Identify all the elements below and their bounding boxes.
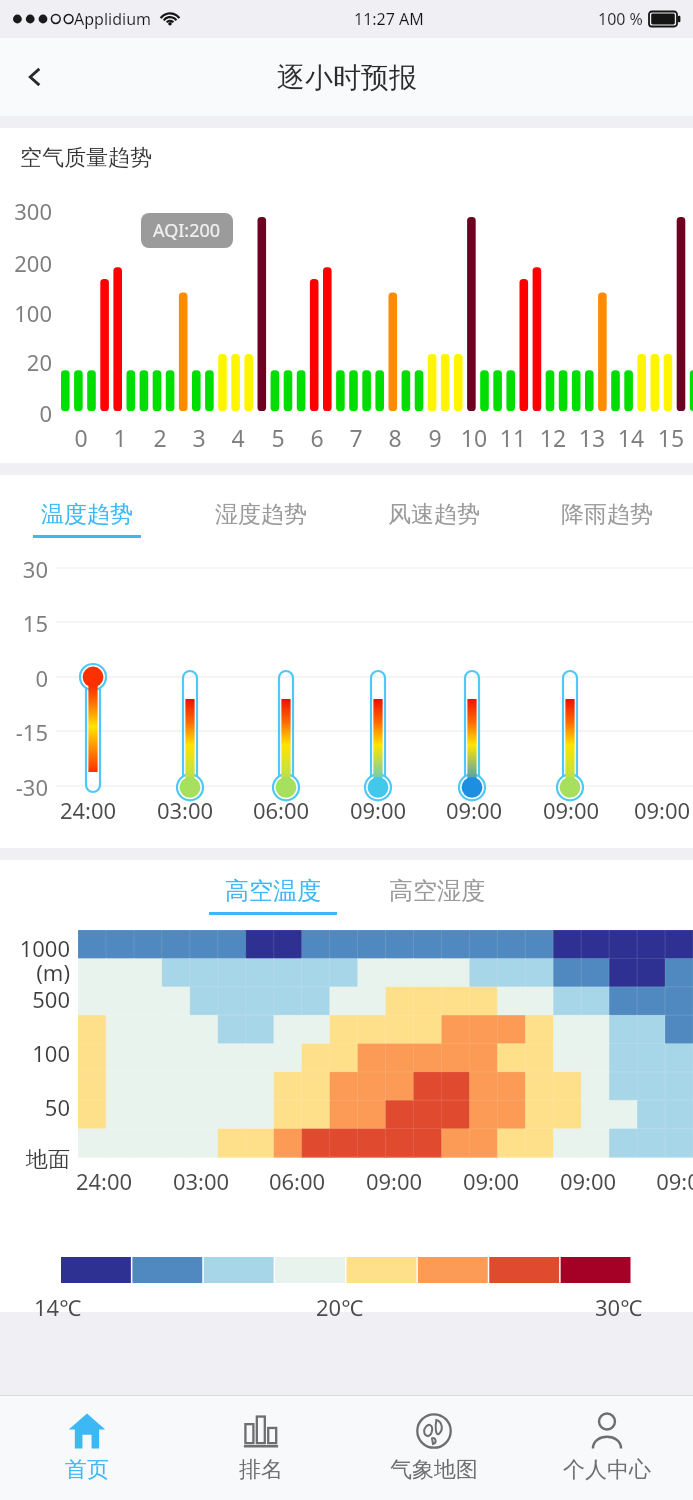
staticText: 逐小时预报	[277, 60, 417, 95]
staticText: 高空湿度	[389, 876, 485, 906]
staticText: 100 %	[598, 8, 643, 30]
staticText: (m)	[0, 957, 70, 987]
button[interactable]: 风速趋势	[347, 491, 520, 547]
staticText: 15	[655, 422, 687, 453]
staticText: 09:00	[614, 795, 693, 825]
staticText: 5	[262, 422, 294, 453]
staticText: 2	[144, 422, 176, 453]
button[interactable]: 湿度趋势	[174, 491, 347, 547]
button[interactable]: 高空湿度	[389, 876, 485, 915]
staticText: 15	[0, 608, 48, 638]
staticText: 4	[222, 422, 254, 453]
staticText: 03:00	[137, 795, 233, 825]
staticText: 温度趋势	[41, 500, 133, 529]
staticText: 排名	[239, 1456, 283, 1484]
staticText: 14	[615, 422, 647, 453]
staticText: 1	[104, 422, 136, 453]
staticText: 300	[0, 196, 52, 226]
staticText: 100	[0, 298, 52, 328]
staticText: 20℃	[316, 1292, 364, 1322]
staticText: 个人中心	[563, 1456, 651, 1484]
button[interactable]: 个人中心	[520, 1396, 693, 1500]
staticText: 03:00	[153, 1166, 249, 1196]
staticText: 24:00	[56, 1166, 152, 1196]
staticText: 09:00	[540, 1166, 636, 1196]
staticText: 09:00	[346, 1166, 442, 1196]
staticText: 气象地图	[390, 1456, 478, 1484]
staticText: 13	[576, 422, 608, 453]
staticText: 200	[0, 248, 52, 278]
staticText: 0	[0, 398, 52, 428]
staticText: 14℃	[34, 1292, 82, 1322]
staticText: 09:00	[443, 1166, 539, 1196]
staticText: 高空温度	[225, 876, 321, 906]
staticText: AQI:200	[153, 218, 221, 243]
staticText: 100	[0, 1038, 70, 1068]
staticText: 06:00	[249, 1166, 345, 1196]
staticText: 地面	[0, 1146, 70, 1174]
button[interactable]: Back	[6, 48, 64, 106]
button[interactable]: 高空温度	[209, 876, 337, 915]
button[interactable]: 首页	[0, 1396, 174, 1500]
staticText: 首页	[65, 1456, 109, 1484]
staticText: 0	[0, 663, 48, 693]
staticText: 3	[183, 422, 215, 453]
staticText: 湿度趋势	[215, 500, 307, 529]
staticText: 09:00	[330, 795, 426, 825]
staticText: 9	[419, 422, 451, 453]
staticText: Applidium	[74, 8, 151, 30]
staticText: 20	[0, 347, 52, 377]
staticText: 降雨趋势	[561, 500, 653, 529]
staticText: 09:00	[523, 795, 619, 825]
staticText: 11	[497, 422, 529, 453]
staticText: 24:00	[40, 795, 136, 825]
staticText: 30	[0, 554, 48, 584]
staticText: 50	[0, 1092, 70, 1122]
button[interactable]: 温度趋势	[0, 491, 174, 547]
staticText: 1000	[0, 933, 70, 963]
staticText: 11:27 AM	[354, 8, 424, 30]
staticText: 12	[537, 422, 569, 453]
staticText: 09:0	[630, 1166, 693, 1196]
staticText: 500	[0, 984, 70, 1014]
staticText: 空气质量趋势	[20, 144, 152, 172]
staticText: 0	[65, 422, 97, 453]
staticText: 30℃	[595, 1292, 643, 1322]
staticText: 10	[458, 422, 490, 453]
staticText: 09:00	[426, 795, 522, 825]
staticText: 06:00	[233, 795, 329, 825]
staticText: 6	[301, 422, 333, 453]
staticText: 风速趋势	[388, 500, 480, 529]
button[interactable]: 气象地图	[347, 1396, 520, 1500]
staticText: 7	[340, 422, 372, 453]
staticText: -15	[0, 717, 48, 747]
staticText: -30	[0, 772, 48, 802]
staticText: 8	[379, 422, 411, 453]
button[interactable]: 降雨趋势	[520, 491, 693, 547]
button[interactable]: 排名	[174, 1396, 347, 1500]
